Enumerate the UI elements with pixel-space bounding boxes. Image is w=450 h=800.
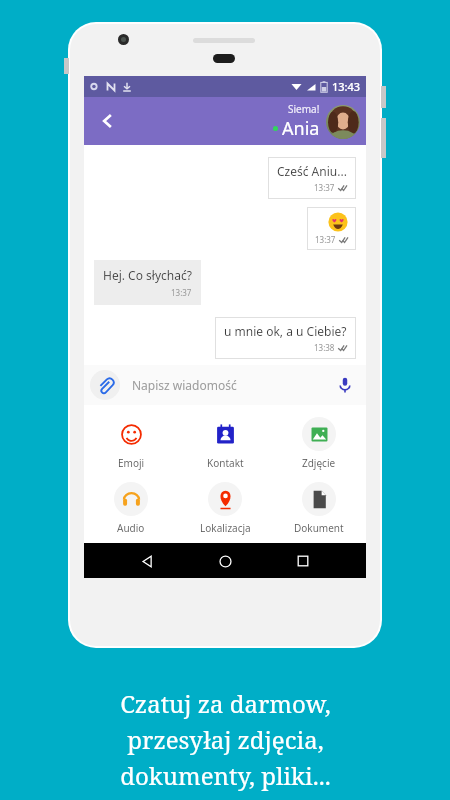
button[interactable]: Hej. Co słychać? <box>94 260 201 305</box>
staticText: Dokument <box>294 521 344 535</box>
staticText: Audio <box>117 521 145 535</box>
staticText: Ania <box>282 116 320 141</box>
button[interactable]: Zdjęcie <box>272 415 366 472</box>
staticText: 13:43 <box>332 79 361 94</box>
staticText: 13:37 <box>314 182 335 193</box>
staticText: Cześć Aniu... <box>277 163 347 179</box>
button[interactable]: Home <box>210 546 240 576</box>
staticText: Emoji <box>118 456 145 470</box>
button[interactable]: 13:37 <box>307 207 356 250</box>
button[interactable]: Dokument <box>272 480 366 537</box>
button[interactable]: Kontakt <box>178 415 272 472</box>
staticText: 13:37 <box>171 287 192 298</box>
button[interactable]: Voice message <box>332 372 358 398</box>
button[interactable]: Emoji <box>84 415 178 472</box>
staticText: Siema! <box>288 102 320 116</box>
button[interactable]: Audio <box>84 480 178 537</box>
button[interactable]: Recents <box>288 546 318 576</box>
staticText: przesyłaj zdjęcia, <box>127 723 324 756</box>
staticText: Kontakt <box>207 456 244 470</box>
staticText: Hej. Co słychać? <box>103 267 192 283</box>
button[interactable]: Contact avatar <box>326 105 360 139</box>
staticText: u mnie ok, a u Ciebie? <box>224 323 347 339</box>
button[interactable]: u mnie ok, a u Ciebie? <box>215 317 356 359</box>
staticText: Lokalizacja <box>200 521 251 535</box>
staticText: 13:38 <box>314 342 335 353</box>
staticText: Zdjęcie <box>302 456 336 470</box>
staticText: dokumenty, pliki... <box>120 759 331 792</box>
staticText: 13:37 <box>315 234 336 245</box>
button[interactable]: Lokalizacja <box>178 480 272 537</box>
button[interactable]: Cześć Aniu... <box>268 157 356 199</box>
button[interactable]: Attach <box>90 370 120 400</box>
staticText: Czatuj za darmow, <box>120 687 331 720</box>
button[interactable]: Back <box>132 546 162 576</box>
button[interactable]: Back <box>90 103 126 139</box>
staticText: Napisz wiadomość <box>132 377 237 393</box>
